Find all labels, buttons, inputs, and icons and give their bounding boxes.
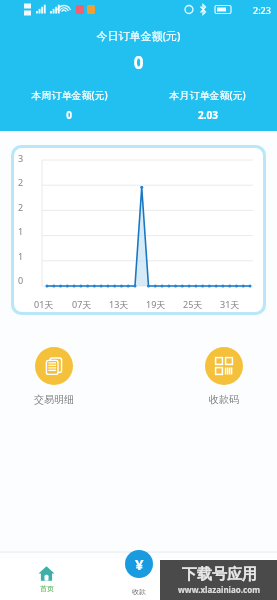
staticText: 2 (18, 201, 24, 213)
staticText: 2 (18, 176, 24, 188)
staticText: 0 (66, 108, 72, 122)
button[interactable]: 首页 (0, 558, 93, 600)
staticText: 本月订单金额(元) (169, 88, 246, 102)
staticText: 本周订单金额(元) (31, 88, 108, 102)
staticText: ¥ (135, 554, 144, 574)
staticText: 31天 (220, 298, 257, 310)
other: 交易明细 (44, 356, 64, 376)
staticText: www.xlazainiao.com (178, 584, 260, 595)
staticText: 3 (18, 152, 24, 164)
staticText: 交易明细 (34, 393, 74, 406)
staticText: 25天 (183, 298, 220, 310)
staticText: 0 (0, 51, 277, 74)
staticText: 1 (18, 250, 24, 262)
staticText: 收款 (132, 587, 146, 596)
staticText: 01天 (34, 298, 72, 310)
staticText: 0 (18, 274, 24, 286)
staticText: 07天 (72, 298, 109, 310)
staticText: 1 (18, 225, 24, 237)
staticText: 今日订单金额(元) (0, 28, 277, 43)
staticText: 首页 (40, 584, 54, 593)
button[interactable]: 交易明细 (30, 343, 78, 410)
staticText: 2:23 (253, 4, 271, 16)
staticText: 下载号应用 (182, 565, 257, 584)
staticText: 收款码 (209, 393, 239, 406)
other: 收款码 (214, 356, 234, 376)
staticText: 2.03 (198, 108, 218, 122)
button[interactable]: 收款码 (201, 343, 247, 410)
staticText: 19天 (146, 298, 183, 310)
button[interactable]: 收款 (125, 550, 153, 578)
staticText: 13天 (109, 298, 146, 310)
